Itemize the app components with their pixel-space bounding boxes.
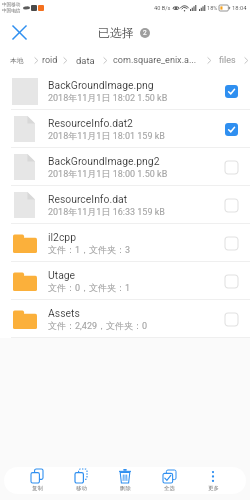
button[interactable]: 移动: [59, 469, 103, 494]
button[interactable]: Select item: [224, 274, 238, 288]
button[interactable]: Assets: [0, 300, 250, 338]
staticText: 2018年11月1日 18:00 1.50 kB: [48, 168, 168, 179]
staticText: 移动: [76, 485, 87, 492]
button[interactable]: data: [76, 55, 95, 66]
staticText: Utage: [48, 269, 76, 281]
staticText: 文件：2,429，文件夹：0: [48, 320, 148, 331]
button[interactable]: BackGroundImage.png: [0, 72, 250, 110]
button[interactable]: files: [219, 55, 236, 66]
staticText: 复制: [32, 485, 43, 492]
button[interactable]: ResourceInfo.dat: [0, 186, 250, 224]
staticText: 18:04: [232, 5, 247, 12]
button[interactable]: 复制: [15, 469, 59, 494]
button[interactable]: Select item: [224, 160, 238, 174]
button[interactable]: Select item: [224, 122, 238, 136]
button[interactable]: BackGroundImage.png2: [0, 148, 250, 186]
staticText: il2cpp: [48, 231, 77, 243]
staticText: ResourceInfo.dat: [48, 193, 128, 205]
staticText: 中国电信: [2, 8, 21, 14]
staticText: 文件：0，文件夹：1: [48, 282, 131, 293]
staticText: Assets: [48, 307, 80, 319]
staticText: ResourceInfo.dat2: [48, 117, 133, 129]
staticText: 已选择: [98, 25, 134, 40]
button[interactable]: Select item: [224, 84, 238, 98]
staticText: 18%: [207, 5, 218, 12]
staticText: 2018年11月1日 18:02 1.50 kB: [48, 92, 168, 103]
button[interactable]: com.square_enix.a...: [113, 55, 197, 66]
button[interactable]: Utage: [0, 262, 250, 300]
staticText: 中国移动: [2, 2, 21, 8]
staticText: BackGroundImage.png2: [48, 155, 160, 167]
staticText: 全选: [164, 485, 175, 492]
button[interactable]: Select item: [224, 312, 238, 326]
button[interactable]: Select item: [224, 236, 238, 250]
staticText: 更多: [208, 485, 219, 492]
staticText: 文件：1，文件夹：3: [48, 244, 131, 255]
button[interactable]: 删除: [103, 469, 147, 494]
button[interactable]: Close: [0, 16, 39, 48]
button[interactable]: 更多: [191, 469, 235, 494]
staticText: 删除: [120, 485, 131, 492]
staticText: 2: [143, 29, 147, 37]
staticText: 2018年11月1日 16:33 159 kB: [48, 206, 165, 217]
button[interactable]: 全选: [147, 469, 191, 494]
button[interactable]: 本地: [10, 56, 24, 65]
staticText: 40 B/s: [154, 5, 171, 12]
button[interactable]: Select item: [224, 198, 238, 212]
button[interactable]: ResourceInfo.dat2: [0, 110, 250, 148]
staticText: 2018年11月1日 18:01 159 kB: [48, 130, 165, 141]
staticText: BackGroundImage.png: [48, 79, 154, 91]
button[interactable]: roid: [42, 55, 58, 66]
button[interactable]: il2cpp: [0, 224, 250, 262]
